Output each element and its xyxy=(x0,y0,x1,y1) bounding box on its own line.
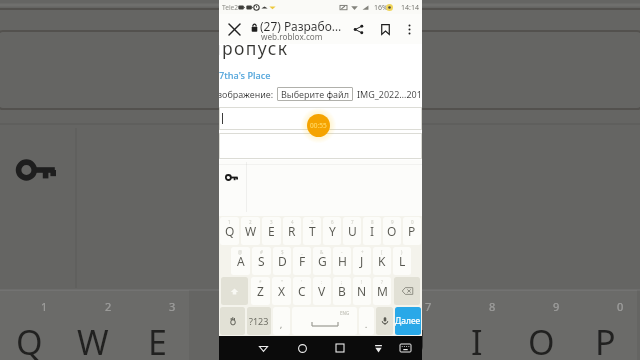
staticText: 00:55 xyxy=(310,121,327,130)
button[interactable]: Handwriting xyxy=(220,307,245,335)
button[interactable]: ' xyxy=(293,277,311,305)
button[interactable]: & xyxy=(313,247,331,275)
staticText: , xyxy=(280,319,283,330)
staticText: ! xyxy=(361,279,363,285)
button[interactable]: Switch keyboard xyxy=(393,336,417,360)
button[interactable]: More options xyxy=(400,14,419,44)
button[interactable]: ! xyxy=(353,277,371,305)
staticText: web.roblox.com xyxy=(261,31,323,42)
staticText: ? xyxy=(381,279,383,285)
staticText: _ xyxy=(301,249,303,255)
staticText: ) xyxy=(401,249,403,255)
staticText: V xyxy=(318,283,326,299)
button[interactable]: ) xyxy=(393,247,411,275)
staticText: Далее xyxy=(395,315,421,327)
button[interactable]: 1 xyxy=(220,217,239,245)
staticText: # xyxy=(260,249,263,255)
button[interactable]: Voice input xyxy=(376,307,393,335)
button[interactable]: Share xyxy=(346,14,370,44)
staticText: C xyxy=(298,283,306,299)
staticText: * xyxy=(259,279,262,285)
button[interactable]: 2 xyxy=(241,217,260,245)
button[interactable]: " xyxy=(272,277,291,305)
button[interactable]: @ xyxy=(231,247,250,275)
staticText: P xyxy=(408,223,416,239)
button[interactable]: 4 xyxy=(283,217,301,245)
button[interactable]: 0 xyxy=(403,217,421,245)
staticText: ( xyxy=(381,249,383,255)
button[interactable]: ; xyxy=(333,277,351,305)
button[interactable]: 9 xyxy=(383,217,401,245)
button[interactable]: 7 xyxy=(343,217,361,245)
button[interactable]: Backspace xyxy=(394,277,420,305)
staticText: 3 xyxy=(169,299,176,314)
staticText: Y xyxy=(329,223,336,239)
button[interactable]: 5 xyxy=(303,217,321,245)
staticText: 8 xyxy=(489,299,496,314)
staticText: пропуск xyxy=(219,36,289,60)
staticText: вображение: xyxy=(219,88,274,100)
button[interactable]: Далее xyxy=(395,307,421,335)
button[interactable]: - xyxy=(333,247,351,275)
staticText: S xyxy=(258,253,265,269)
button[interactable]: 6 xyxy=(323,217,341,245)
staticText: x7tha's Place xyxy=(219,69,271,82)
staticText: 5 xyxy=(311,219,314,225)
button[interactable]: Hide keyboard xyxy=(366,336,390,360)
staticText: X xyxy=(278,283,286,299)
staticText: 0 xyxy=(617,299,624,314)
button[interactable]: $ xyxy=(273,247,291,275)
staticText: A xyxy=(237,253,245,269)
staticText: F xyxy=(299,253,306,269)
staticText: I xyxy=(471,319,483,360)
staticText: 0 xyxy=(411,219,414,225)
staticText: E xyxy=(268,223,275,239)
button[interactable]: 8 xyxy=(363,217,381,245)
staticText: I xyxy=(370,223,375,239)
button[interactable]: : xyxy=(313,277,331,305)
button[interactable] xyxy=(219,107,422,130)
button[interactable]: ? xyxy=(373,277,391,305)
staticText: W xyxy=(245,223,257,239)
staticText: G xyxy=(318,253,327,269)
button[interactable]: Shift xyxy=(221,277,248,305)
staticText: ; xyxy=(341,279,343,285)
staticText: W xyxy=(77,319,109,360)
button[interactable]: Выберите файл xyxy=(281,87,349,101)
staticText: IMG_2022…2018 xyxy=(357,88,420,100)
staticText: U xyxy=(348,223,357,239)
button[interactable]: ( xyxy=(373,247,391,275)
staticText: (27) Разрабо… xyxy=(260,18,342,34)
button[interactable]: Home xyxy=(290,336,314,360)
button[interactable]: + xyxy=(353,247,371,275)
staticText: 9 xyxy=(391,219,394,225)
staticText: ENG xyxy=(340,310,350,316)
button[interactable]: Recents xyxy=(328,336,352,360)
staticText: 7 xyxy=(425,299,432,314)
button[interactable]: Symbols xyxy=(247,307,271,335)
staticText: K xyxy=(378,253,386,269)
button[interactable]: # xyxy=(252,247,271,275)
button[interactable]: Space xyxy=(292,307,357,335)
button[interactable]: , xyxy=(273,307,290,335)
staticText: E xyxy=(148,319,167,360)
staticText: T xyxy=(309,223,316,239)
staticText: " xyxy=(281,279,283,285)
staticText: 1 xyxy=(41,299,48,314)
staticText: : xyxy=(321,279,323,285)
staticText: & xyxy=(320,249,324,255)
staticText: H xyxy=(338,253,347,269)
staticText: 1 xyxy=(228,219,231,225)
button[interactable] xyxy=(219,133,422,159)
button[interactable]: Back xyxy=(251,336,275,360)
staticText: M xyxy=(377,283,388,299)
staticText: 7 xyxy=(351,219,354,225)
button[interactable]: * xyxy=(251,277,270,305)
button[interactable]: . xyxy=(359,307,374,335)
staticText: L xyxy=(399,253,406,269)
button[interactable]: 3 xyxy=(262,217,281,245)
button[interactable]: Bookmark xyxy=(373,14,397,44)
button[interactable]: Close xyxy=(222,14,246,44)
button[interactable]: _ xyxy=(293,247,311,275)
staticText: Tele2 xyxy=(222,3,239,12)
